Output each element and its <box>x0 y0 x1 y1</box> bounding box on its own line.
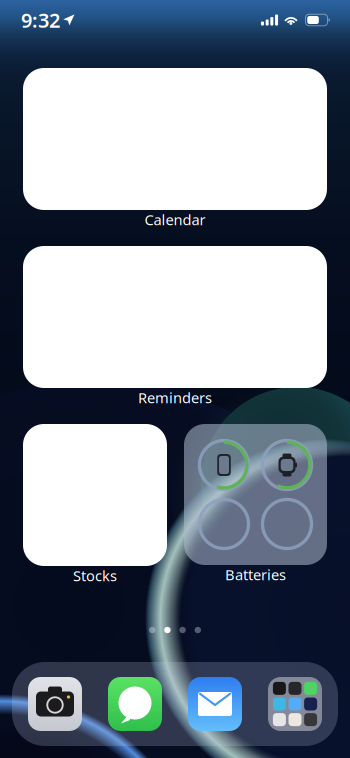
button[interactable]: Stocks <box>23 424 167 582</box>
button[interactable]: Batteries <box>184 424 327 581</box>
button[interactable]: Camera <box>28 677 82 731</box>
staticText: Stocks <box>73 566 117 585</box>
staticText: 9:32 <box>21 7 60 33</box>
button[interactable]: Messages <box>108 677 162 731</box>
staticText: Calendar <box>144 210 205 229</box>
button[interactable]: Apps folder <box>268 677 322 731</box>
staticText: Reminders <box>138 388 212 407</box>
button[interactable]: Calendar <box>23 68 327 226</box>
button[interactable]: Reminders <box>23 246 327 404</box>
button[interactable]: Mail <box>188 677 242 731</box>
staticText: Batteries <box>225 565 286 584</box>
